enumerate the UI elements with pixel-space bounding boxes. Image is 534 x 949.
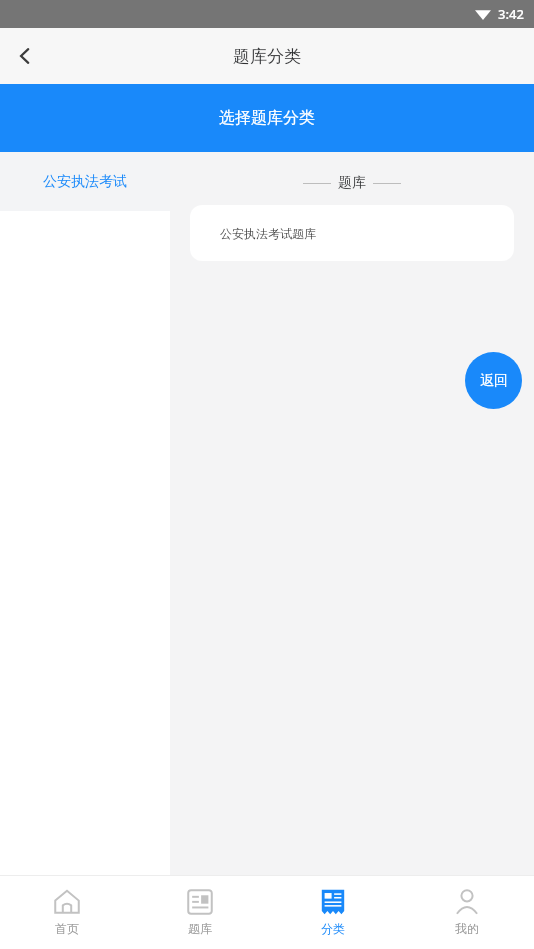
button[interactable]: 公安执法考试题库 bbox=[190, 205, 514, 261]
staticText: 分类 bbox=[321, 921, 345, 936]
staticText: 题库 bbox=[338, 174, 366, 192]
staticText: 我的 bbox=[455, 921, 479, 936]
staticText: 公安执法考试题库 bbox=[220, 226, 316, 241]
staticText: 题库 bbox=[188, 921, 212, 936]
button[interactable]: 返回 bbox=[465, 352, 522, 409]
button[interactable]: 分类 bbox=[266, 875, 400, 949]
staticText: 公安执法考试 bbox=[43, 173, 127, 191]
staticText: 返回 bbox=[480, 372, 508, 390]
button[interactable]: 我的 bbox=[400, 875, 534, 949]
staticText: 首页 bbox=[55, 921, 79, 936]
staticText: 选择题库分类 bbox=[219, 108, 315, 128]
button[interactable]: 选择题库分类 bbox=[0, 84, 534, 152]
staticText: 3:42 bbox=[498, 5, 524, 23]
button[interactable]: 首页 bbox=[0, 875, 133, 949]
button[interactable]: Back bbox=[0, 31, 50, 81]
button[interactable]: 题库 bbox=[133, 875, 266, 949]
button[interactable]: 公安执法考试 bbox=[0, 152, 170, 211]
staticText: 题库分类 bbox=[233, 46, 301, 67]
